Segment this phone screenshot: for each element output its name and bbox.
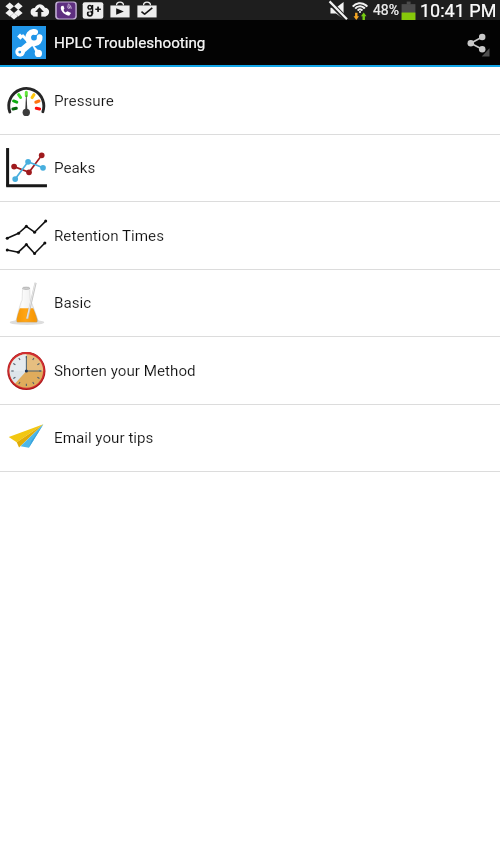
button[interactable]: Share (456, 20, 500, 65)
staticText: Basic (54, 294, 92, 312)
staticText: Shorten your Method (54, 362, 196, 380)
staticText: 48% (373, 2, 399, 18)
button[interactable]: Basic (0, 270, 500, 336)
staticText: Email your tips (54, 429, 154, 447)
staticText: Retention Times (54, 227, 164, 245)
staticText: Peaks (54, 159, 96, 177)
button[interactable]: Retention Times (0, 202, 500, 269)
staticText: Pressure (54, 92, 114, 110)
button[interactable]: Email your tips (0, 405, 500, 471)
staticText: 10:41 PM (420, 0, 497, 20)
button[interactable]: Peaks (0, 135, 500, 201)
button[interactable]: Pressure (0, 67, 500, 134)
staticText: HPLC Troubleshooting (54, 34, 206, 52)
button[interactable]: Shorten your Method (0, 337, 500, 404)
